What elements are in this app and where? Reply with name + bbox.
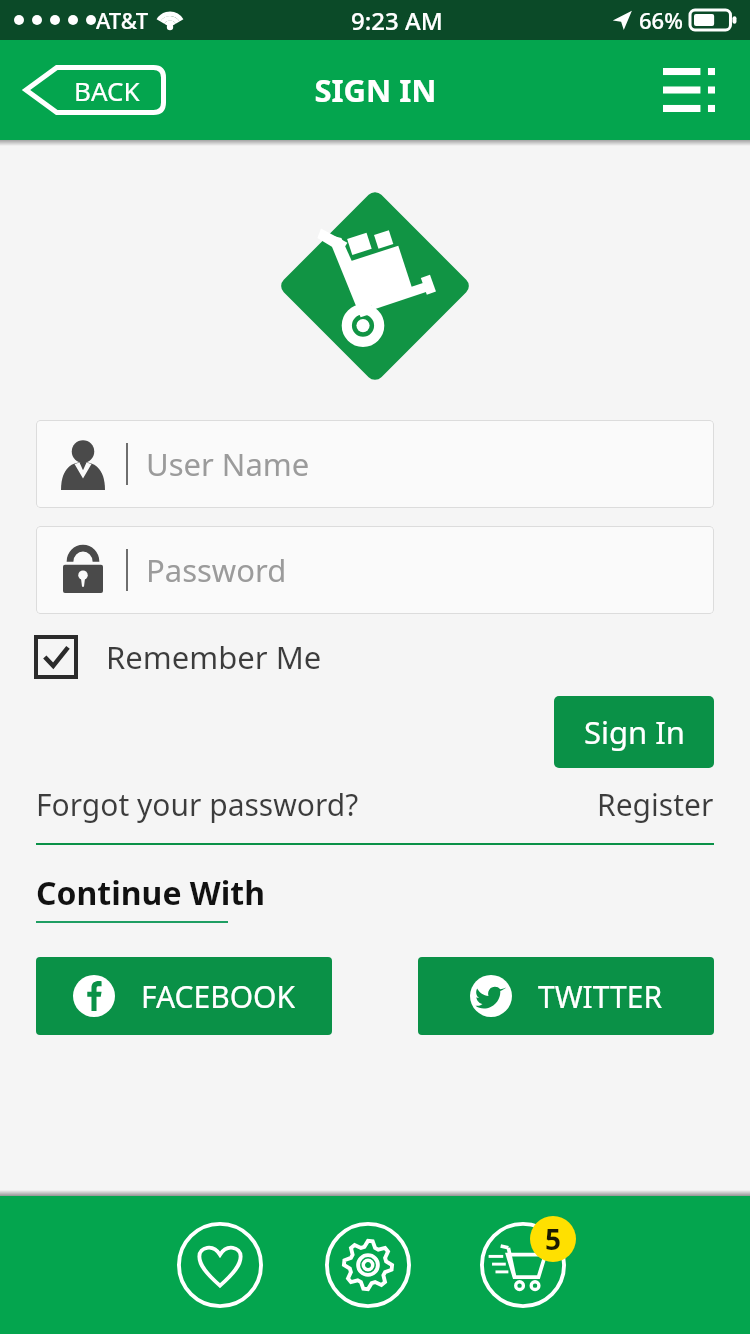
button[interactable]: Remember Me <box>36 636 322 678</box>
staticText: User Name <box>146 443 310 485</box>
staticText: Continue With <box>36 871 266 915</box>
button[interactable]: Settings <box>320 1217 416 1313</box>
button[interactable]: Register <box>597 784 714 825</box>
staticText: 66% <box>639 5 683 35</box>
button[interactable]: Sign In <box>554 696 714 768</box>
staticText: Password <box>146 549 287 591</box>
button[interactable]: Password <box>36 526 714 614</box>
button[interactable]: Favorites <box>172 1217 268 1313</box>
staticText: Sign In <box>584 711 685 753</box>
staticText: Register <box>597 784 714 825</box>
staticText: Remember Me <box>106 636 322 678</box>
staticText: 5 <box>545 1220 562 1258</box>
button[interactable]: Menu <box>654 60 724 120</box>
button[interactable]: TWITTER <box>418 957 714 1035</box>
button[interactable]: FACEBOOK <box>36 957 332 1035</box>
staticText: TWITTER <box>538 976 663 1017</box>
staticText: AT&T <box>96 5 149 35</box>
staticText: 9:23 AM <box>351 4 443 37</box>
button[interactable]: User Name <box>36 420 714 508</box>
staticText: BACK <box>74 73 140 108</box>
button[interactable]: Forgot your password? <box>36 784 359 825</box>
staticText: FACEBOOK <box>141 976 296 1017</box>
button[interactable]: Cart, 5 items <box>468 1210 578 1320</box>
button[interactable]: Back <box>26 65 166 115</box>
staticText: Forgot your password? <box>36 784 359 825</box>
staticText: SIGN IN <box>314 69 437 111</box>
